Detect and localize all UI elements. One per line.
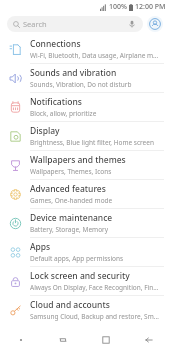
staticText: Display	[30, 125, 60, 137]
staticText: Wallpapers, Themes, Icons	[30, 167, 112, 176]
staticText: Notifications	[30, 96, 82, 108]
staticText: Cloud and accounts	[30, 299, 110, 311]
button[interactable]: Account	[147, 16, 163, 32]
staticText: 100%	[109, 2, 127, 12]
staticText: Sounds and vibration	[30, 67, 117, 79]
staticText: Advanced features	[30, 183, 106, 195]
staticText: Brightness, Blue light filter, Home scre…	[30, 138, 154, 147]
staticText: Games, One-handed mode	[30, 196, 113, 205]
button[interactable]: Advanced features	[0, 180, 170, 208]
button[interactable]: Wallpapers and themes	[0, 151, 170, 179]
button[interactable]: Apps	[0, 238, 170, 266]
button[interactable]: Notifications	[0, 93, 170, 121]
button[interactable]: Recents	[42, 330, 84, 350]
button[interactable]: Assistant	[0, 330, 42, 350]
button[interactable]: Cloud and accounts	[0, 296, 170, 324]
staticText: Search	[23, 19, 47, 29]
button[interactable]: Back	[127, 330, 170, 350]
staticText: Samsung Cloud, Backup and restore, Smart…	[30, 312, 162, 321]
staticText: Wi-Fi, Bluetooth, Data usage, Airplane m…	[30, 51, 162, 60]
staticText: Default apps, App permissions	[30, 254, 124, 263]
staticText: Connections	[30, 38, 81, 50]
staticText: Apps	[30, 241, 51, 253]
staticText: Block, allow, prioritize	[30, 109, 97, 118]
button[interactable]: Search	[7, 16, 143, 32]
staticText: Device maintenance	[30, 212, 113, 224]
staticText: Lock screen and security	[30, 270, 130, 282]
button[interactable]: Display	[0, 122, 170, 150]
button[interactable]: Connections	[0, 35, 170, 63]
staticText: Battery, Storage, Memory	[30, 225, 109, 234]
staticText: Sounds, Vibration, Do not disturb	[30, 80, 132, 89]
button[interactable]: Device maintenance	[0, 209, 170, 237]
button[interactable]: Lock screen and security	[0, 267, 170, 295]
button[interactable]: Home	[84, 330, 127, 350]
button[interactable]: Sounds and vibration	[0, 64, 170, 92]
button[interactable]: Voice search	[127, 19, 137, 29]
staticText: Wallpapers and themes	[30, 154, 126, 166]
staticText: 12:00 PM	[135, 2, 166, 12]
staticText: Always On Display, Face Recognition, Fin…	[30, 283, 162, 292]
